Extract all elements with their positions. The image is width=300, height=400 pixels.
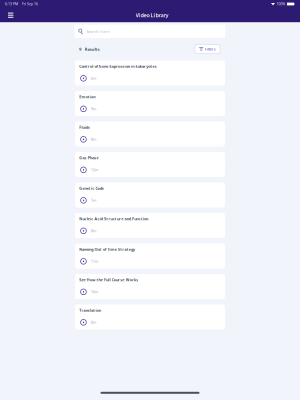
staticText: 8m [91, 137, 97, 142]
staticText: 100% [276, 2, 285, 6]
staticText: Search here [86, 28, 109, 34]
button[interactable]: Running Out of Time Strategy [75, 243, 225, 268]
staticText: Fluids [79, 125, 90, 130]
staticText: Results [85, 46, 100, 52]
staticText: Genetic Code [79, 186, 104, 191]
button[interactable]: Control of Gene Expression in Eukaryotes [75, 60, 225, 85]
button[interactable]: Menu [8, 8, 22, 22]
staticText: Gas Phase [79, 155, 98, 160]
staticText: Filters [205, 46, 216, 52]
button[interactable]: Gas Phase [75, 152, 225, 177]
staticText: Translation [79, 308, 101, 313]
staticText: 10m [91, 289, 99, 294]
staticText: Fri Sep 16 [22, 2, 38, 6]
button[interactable]: Nucleic Acid Structure and Function [75, 213, 225, 238]
staticText: Nucleic Acid Structure and Function [79, 216, 148, 221]
staticText: 9 [79, 46, 81, 52]
button[interactable]: Emotion [75, 91, 225, 116]
staticText: Control of Gene Expression in Eukaryotes [79, 64, 157, 69]
staticText: 8m [91, 320, 97, 325]
staticText: 6m [91, 76, 97, 81]
button[interactable]: Genetic Code [75, 182, 225, 207]
staticText: See How the Full Course Works [79, 277, 138, 282]
staticText: Video Library [135, 11, 168, 19]
button[interactable]: Filters [195, 45, 220, 53]
staticText: Emotion [79, 94, 95, 99]
button[interactable]: Translation [75, 304, 225, 329]
button[interactable]: Fluids [75, 121, 225, 146]
staticText: 7m [91, 198, 97, 203]
button[interactable]: See How the Full Course Works [75, 274, 225, 299]
staticText: 11m [91, 259, 99, 264]
staticText: 6:13 PM [5, 2, 18, 6]
staticText: 9m [91, 106, 97, 111]
staticText: 12m [91, 167, 99, 172]
staticText: Running Out of Time Strategy [79, 247, 135, 252]
staticText: 8m [91, 228, 97, 233]
